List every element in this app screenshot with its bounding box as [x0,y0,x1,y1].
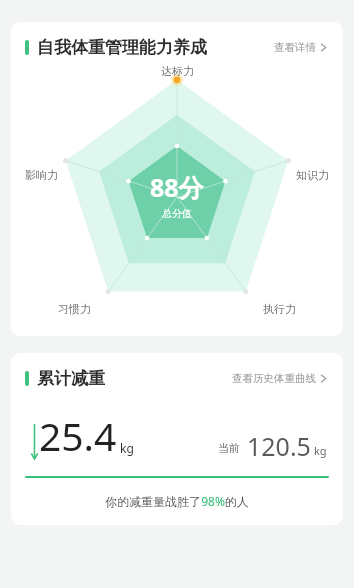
staticText: 影响力 [25,168,58,182]
button[interactable]: View details [272,38,329,57]
staticText: kg [120,440,134,456]
staticText: 当前 [218,441,240,455]
staticText: kg [314,443,327,458]
staticText: 达标力 [161,64,194,78]
staticText: 你的减重量战胜了98%的人 [25,493,329,509]
staticText: 查看详情 [274,41,316,54]
staticText: 知识力 [296,168,329,182]
staticText: 执行力 [263,302,296,316]
staticText: 累计减重 [37,368,105,389]
staticText: 总分值 [162,207,192,220]
staticText: 88分 [150,170,204,204]
staticText: 自我体重管理能力养成 [37,37,207,58]
button[interactable]: View weight history chart [230,369,329,388]
staticText: 习惯力 [58,302,91,316]
staticText: 查看历史体重曲线 [232,372,316,385]
staticText: 25.4 [39,409,117,462]
staticText: 120.5 [247,429,311,463]
